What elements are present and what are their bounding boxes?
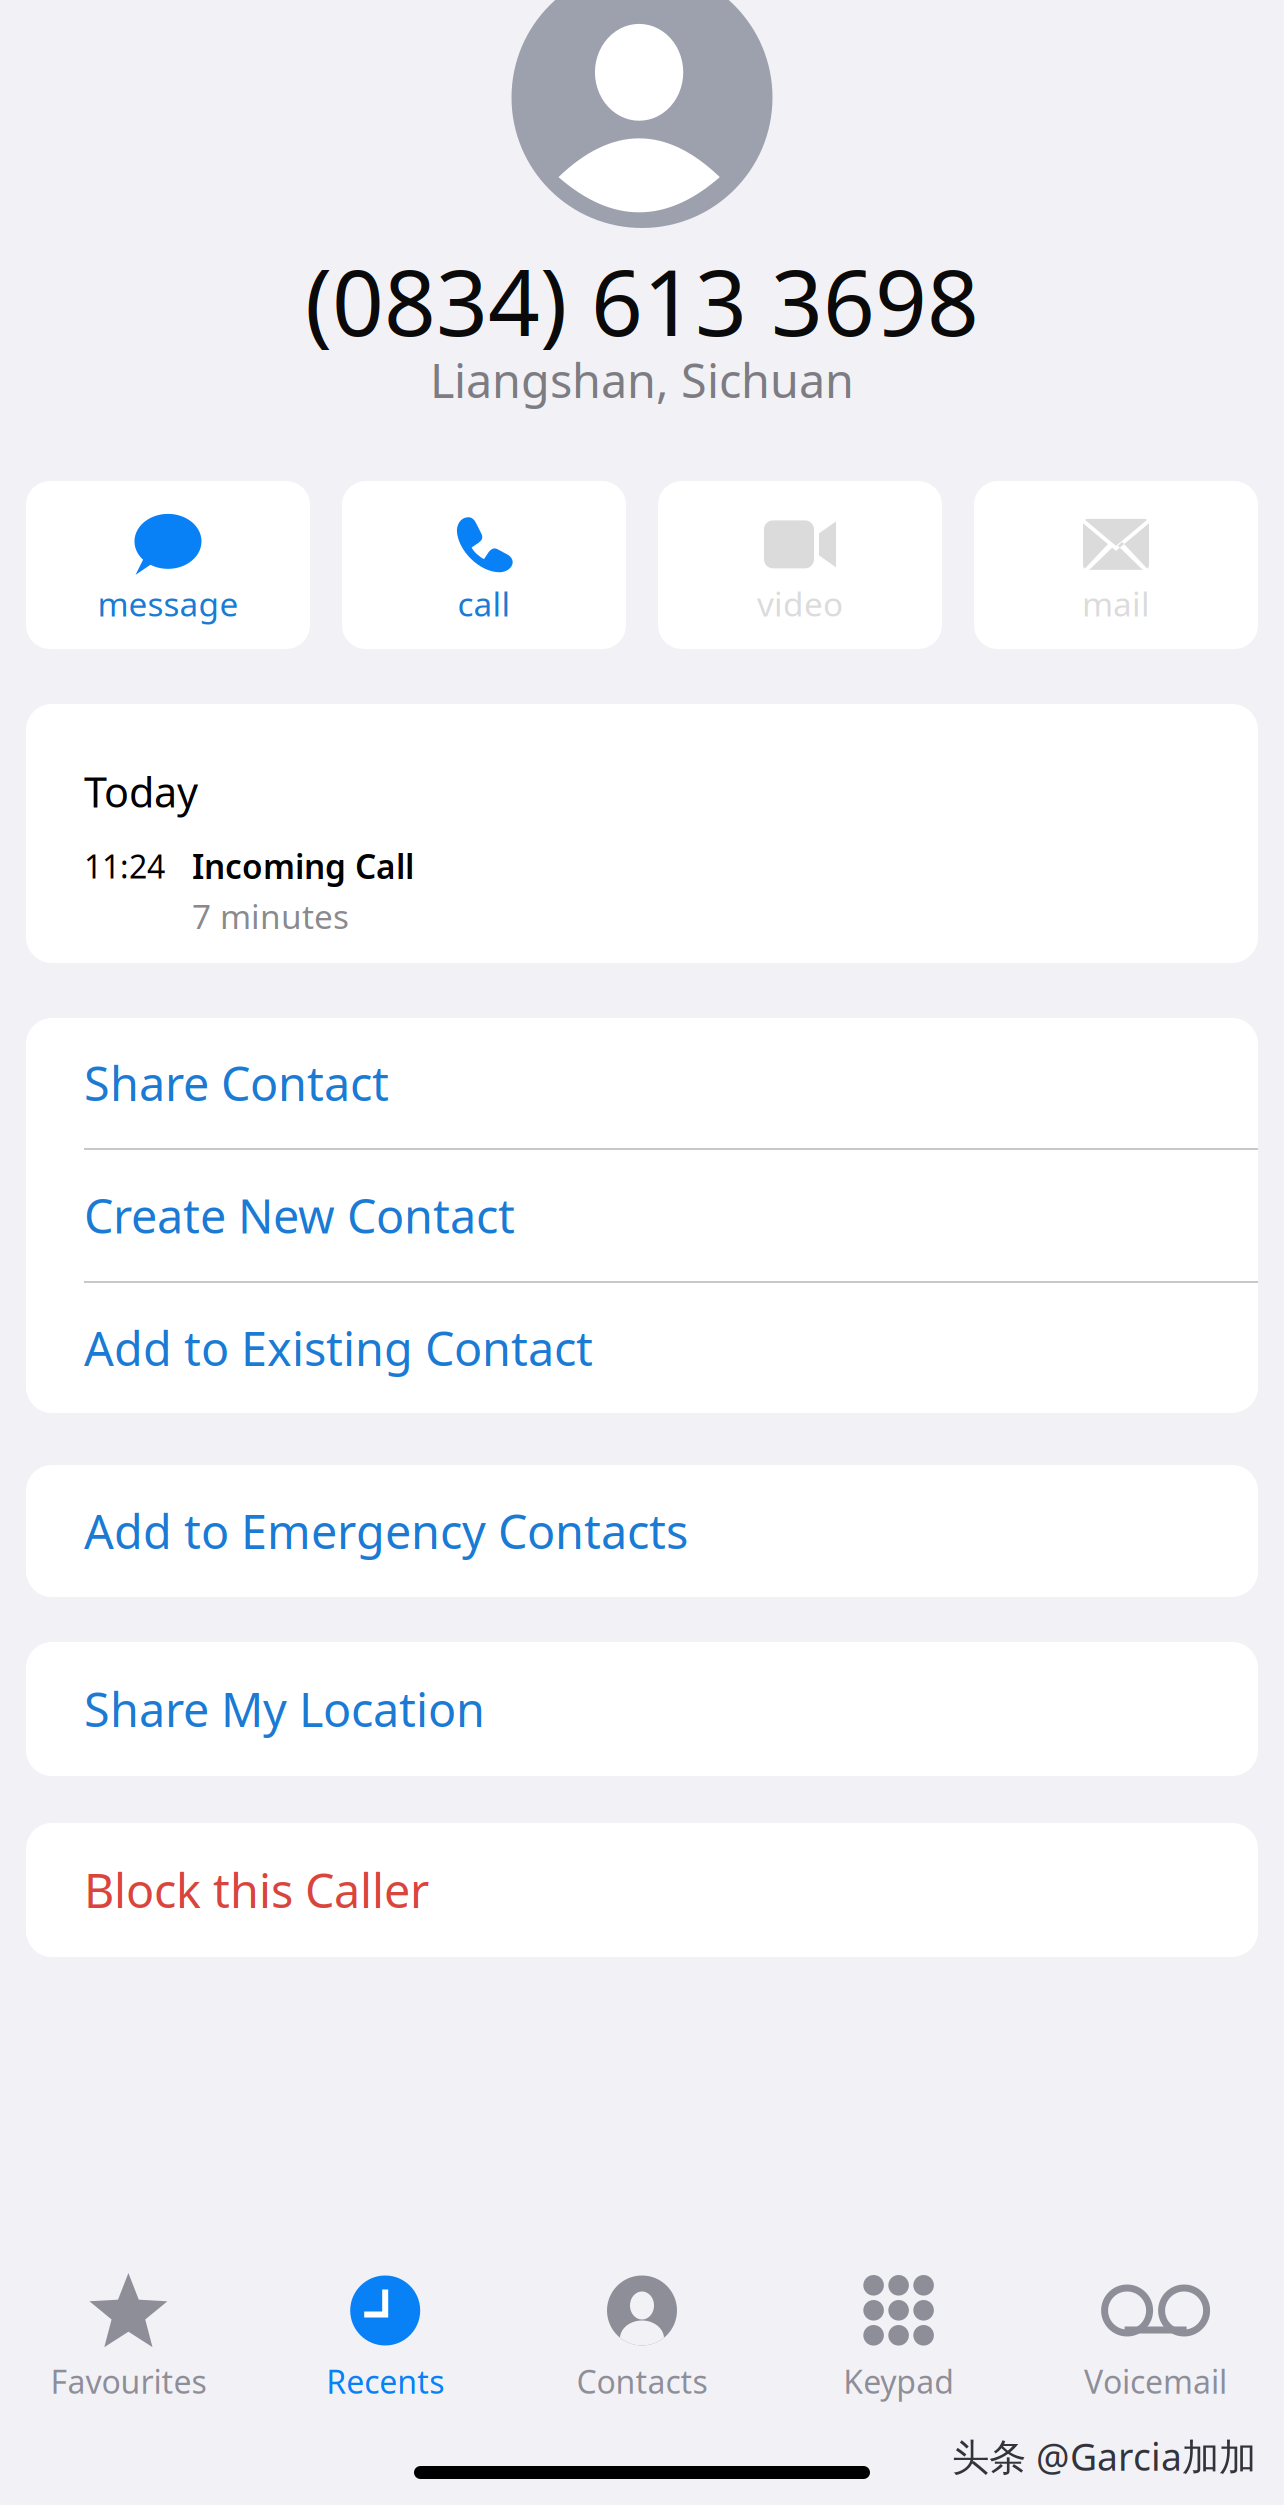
staticText: (0834) 613 3698 — [305, 241, 979, 361]
button[interactable]: Keypad — [770, 2273, 1027, 2397]
button[interactable]: message — [26, 481, 310, 649]
staticText: call — [457, 581, 510, 626]
staticText: Contacts — [576, 2360, 707, 2402]
staticText: 头条 @Garcia加加 — [952, 2431, 1256, 2481]
staticText: Recents — [326, 2360, 444, 2402]
button[interactable]: Contacts — [514, 2273, 770, 2397]
staticText: message — [97, 581, 238, 626]
staticText: Share My Location — [84, 1678, 485, 1740]
button[interactable]: video — [658, 481, 942, 649]
button[interactable]: Voicemail — [1027, 2273, 1284, 2397]
staticText: Favourites — [50, 2360, 206, 2402]
staticText: Add to Emergency Contacts — [84, 1500, 688, 1562]
button[interactable]: Share My Location — [26, 1642, 1258, 1776]
button[interactable]: Recents — [257, 2273, 514, 2397]
staticText: mail — [1082, 581, 1150, 626]
button[interactable]: Block this Caller — [26, 1823, 1258, 1957]
button[interactable]: Share Contact — [26, 1018, 1258, 1148]
button[interactable]: call — [342, 481, 626, 649]
button[interactable]: Add to Emergency Contacts — [26, 1465, 1258, 1597]
staticText: 7 minutes — [192, 894, 349, 938]
button[interactable]: mail — [974, 481, 1258, 649]
staticText: Share Contact — [84, 1052, 389, 1114]
button[interactable]: Favourites — [0, 2273, 257, 2397]
staticText: Today — [84, 764, 198, 819]
button[interactable]: Create New Contact — [26, 1150, 1258, 1281]
staticText: Add to Existing Contact — [84, 1317, 593, 1379]
staticText: Liangshan, Sichuan — [430, 349, 854, 411]
staticText: Create New Contact — [84, 1184, 515, 1246]
button[interactable]: Add to Existing Contact — [26, 1283, 1258, 1413]
staticText: Block this Caller — [84, 1859, 429, 1921]
staticText: Keypad — [843, 2360, 954, 2402]
staticText: Voicemail — [1084, 2360, 1227, 2402]
staticText: video — [757, 581, 843, 626]
staticText: 11:24 — [84, 845, 165, 887]
staticText: Incoming Call — [192, 844, 414, 888]
